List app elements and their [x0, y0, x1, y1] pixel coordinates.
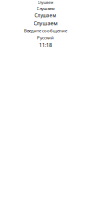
staticText: Слушаем: [33, 19, 57, 27]
staticText: 11:18: [39, 41, 52, 49]
staticText: Русский: [37, 35, 54, 40]
staticText: Слушаем: [36, 6, 54, 11]
staticText: Слушаем: [34, 12, 56, 19]
staticText: Введите сообщение: [24, 28, 67, 34]
staticText: Слушаем: [37, 0, 53, 5]
